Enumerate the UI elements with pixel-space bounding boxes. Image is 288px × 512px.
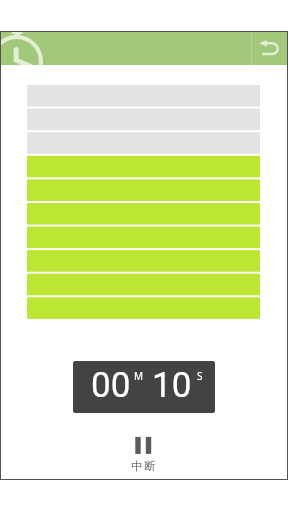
button[interactable]: 中断 <box>120 430 170 476</box>
button[interactable]: 00 <box>73 361 215 413</box>
staticText: 中断 <box>131 459 158 474</box>
staticText: M <box>134 369 144 383</box>
staticText: 00 <box>91 365 131 406</box>
button[interactable]: Undo <box>250 32 287 65</box>
staticText: 10 <box>152 365 192 406</box>
staticText: S <box>197 369 203 383</box>
